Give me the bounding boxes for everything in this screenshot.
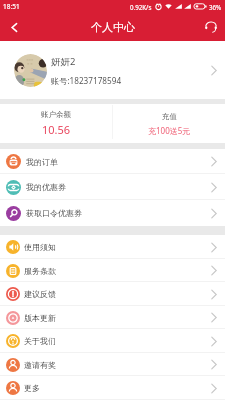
- button[interactable]: Customer service: [197, 13, 225, 41]
- button[interactable]: 使用须知: [0, 235, 225, 259]
- staticText: 18:51: [3, 2, 20, 11]
- button[interactable]: 版本更新: [0, 306, 225, 329]
- staticText: 我的优惠券: [26, 182, 66, 192]
- staticText: 充100送5元: [148, 125, 191, 136]
- button[interactable]: 建议反馈: [0, 282, 225, 306]
- button[interactable]: 关于我们: [0, 329, 225, 353]
- staticText: 更多: [24, 383, 40, 393]
- staticText: 妍妍2: [51, 55, 76, 68]
- staticText: 邀请有奖: [24, 360, 56, 370]
- button[interactable]: 服务条款: [0, 259, 225, 282]
- staticText: 获取口令优惠券: [26, 208, 82, 218]
- button[interactable]: 妍妍2: [14, 41, 217, 99]
- staticText: 建议反馈: [24, 289, 56, 299]
- button[interactable]: 获取口令优惠券: [0, 200, 225, 226]
- staticText: 0.92K/s: [130, 3, 152, 11]
- staticText: 关于我们: [24, 336, 56, 346]
- staticText: 充值: [162, 112, 177, 121]
- button[interactable]: 账户余额: [0, 104, 112, 143]
- staticText: 我的订单: [26, 157, 58, 167]
- button[interactable]: Back: [0, 13, 28, 41]
- staticText: 10.56: [42, 122, 71, 137]
- button[interactable]: 我的优惠券: [0, 174, 225, 200]
- staticText: 个人中心: [91, 20, 135, 34]
- button[interactable]: 充值: [113, 104, 225, 143]
- staticText: 使用须知: [24, 242, 56, 252]
- staticText: 账号:18237178594: [51, 75, 122, 86]
- button[interactable]: 我的订单: [0, 149, 225, 174]
- staticText: 36%: [209, 3, 222, 11]
- staticText: 服务条款: [24, 266, 56, 276]
- staticText: 账户余额: [41, 110, 71, 119]
- button[interactable]: 邀请有奖: [0, 353, 225, 376]
- button[interactable]: 更多: [0, 376, 225, 400]
- staticText: 版本更新: [24, 313, 56, 323]
